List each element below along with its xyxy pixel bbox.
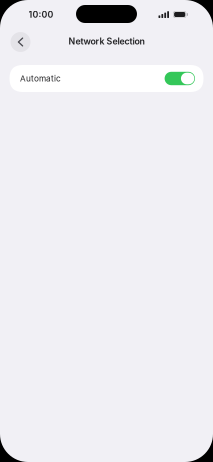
- button[interactable]: Back: [10, 32, 30, 52]
- staticText: Network Selection: [68, 36, 144, 46]
- staticText: 10:00: [28, 9, 53, 20]
- button[interactable]: Automatic: [9, 65, 203, 92]
- staticText: Automatic: [20, 73, 61, 83]
